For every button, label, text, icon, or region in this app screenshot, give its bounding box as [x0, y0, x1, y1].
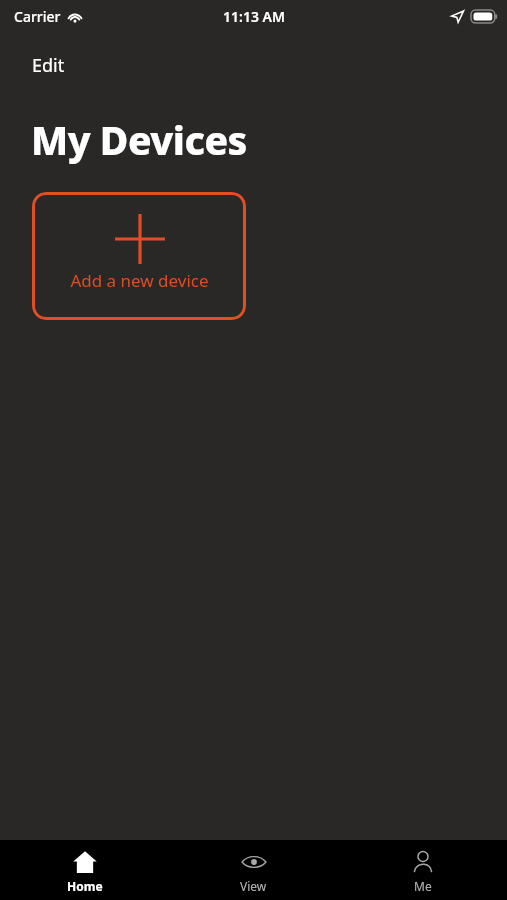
staticText: View: [240, 878, 267, 894]
staticText: My Devices: [31, 113, 247, 166]
button[interactable]: View: [169, 840, 338, 900]
staticText: Carrier: [14, 7, 61, 26]
staticText: Edit: [32, 53, 65, 78]
staticText: Add a new device: [70, 269, 209, 292]
staticText: Me: [414, 878, 432, 894]
other: Home: [73, 850, 97, 874]
other: Add a new device: [114, 213, 166, 265]
other: Me: [411, 850, 435, 874]
button[interactable]: Me: [338, 840, 507, 900]
staticText: 11:13 AM: [223, 7, 285, 26]
button[interactable]: Edit: [26, 48, 71, 83]
other: View: [241, 850, 267, 874]
button[interactable]: Home: [0, 840, 169, 900]
button[interactable]: Add a new device: [32, 192, 246, 320]
staticText: Home: [67, 878, 103, 894]
